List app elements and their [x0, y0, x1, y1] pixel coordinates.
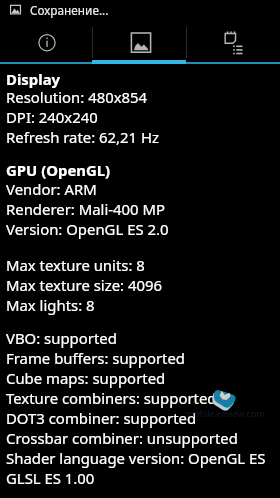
staticText: Refresh rate: 62,21 Hz: [6, 127, 160, 147]
staticText: VBO: supported: [6, 328, 117, 348]
staticText: Max texture units: 8: [6, 255, 145, 275]
staticText: Version: OpenGL ES 2.0: [6, 219, 169, 239]
staticText: DPI: 240x240: [6, 107, 98, 127]
staticText: DOT3 combiner: supported: [6, 408, 197, 428]
staticText: mobile-review.com: [186, 407, 265, 419]
staticText: Vendor: ARM: [6, 179, 97, 199]
staticText: GPU (OpenGL): [6, 160, 111, 180]
staticText: Сохранение...: [30, 2, 109, 18]
button[interactable]: Info tab: [0, 0, 94, 65]
button[interactable]: Tasks tab: [187, 0, 280, 65]
staticText: GLSL ES 1.00: [6, 468, 95, 488]
staticText: Max lights: 8: [6, 295, 95, 315]
staticText: Cube maps: supported: [6, 368, 166, 388]
staticText: Resolution: 480x854: [6, 87, 148, 107]
button[interactable]: Image tab: [94, 0, 187, 65]
staticText: Frame buffers: supported: [6, 348, 186, 368]
staticText: Renderer: Mali-400 MP: [6, 199, 165, 219]
staticText: Crossbar combiner: unsupported: [6, 428, 238, 448]
staticText: Shader language version: OpenGL ES: [6, 448, 266, 468]
staticText: Texture combiners: supported: [6, 388, 217, 408]
staticText: Display: [6, 69, 61, 89]
staticText: Max texture size: 4096: [6, 275, 162, 295]
